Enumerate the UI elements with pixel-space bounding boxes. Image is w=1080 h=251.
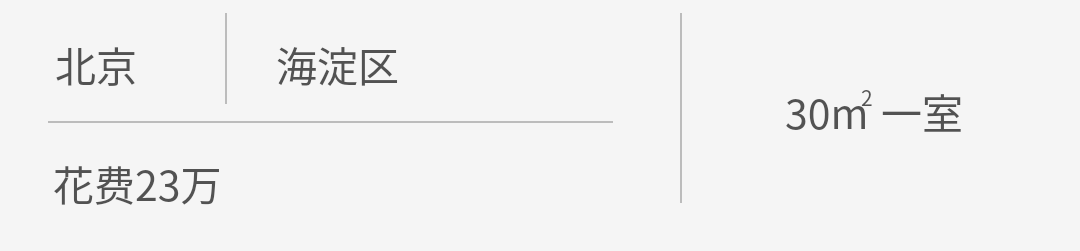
staticText: 一室 <box>881 81 963 140</box>
staticText: 30m <box>785 81 869 140</box>
staticText: 北京 <box>55 34 137 93</box>
button[interactable]: 花费23万 <box>53 153 222 212</box>
staticText: 2 <box>861 82 873 112</box>
staticText: 花费23万 <box>53 153 222 212</box>
button[interactable]: 北京 <box>55 34 137 93</box>
staticText: 海淀区 <box>276 34 399 93</box>
button[interactable]: 30m <box>785 81 869 140</box>
button[interactable]: 海淀区 <box>276 34 399 93</box>
